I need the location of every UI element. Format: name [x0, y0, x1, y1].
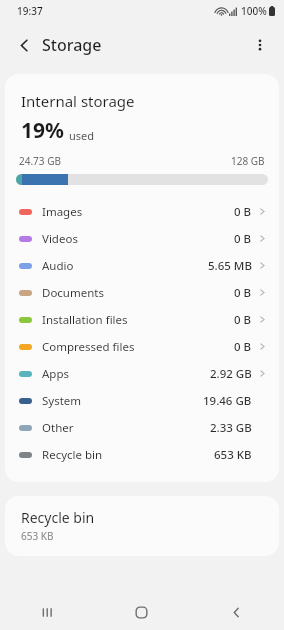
staticText: Recycle bin — [42, 447, 103, 463]
button[interactable]: Compressed files — [5, 333, 279, 360]
staticText: Apps — [42, 366, 70, 382]
staticText: 2.33 GB — [210, 420, 252, 436]
staticText: 0 B — [234, 285, 252, 301]
staticText: Documents — [42, 285, 104, 301]
staticText: 100% — [241, 4, 267, 18]
staticText: 128 GB — [231, 154, 265, 168]
button[interactable]: Apps — [5, 360, 279, 387]
staticText: 19:37 — [17, 4, 43, 18]
staticText: Other — [42, 420, 74, 436]
staticText: Installation files — [42, 312, 128, 328]
staticText: 653 KB — [21, 529, 54, 543]
button[interactable]: Home — [94, 594, 189, 630]
staticText: Storage — [42, 34, 102, 56]
button[interactable]: Documents — [5, 279, 279, 306]
staticText: Recycle bin — [21, 508, 95, 527]
staticText: 0 B — [234, 312, 252, 328]
staticText: System — [42, 393, 82, 409]
staticText: 0 B — [234, 339, 252, 355]
staticText: 0 B — [234, 204, 252, 220]
staticText: 19% — [21, 116, 64, 145]
button[interactable]: System — [5, 387, 279, 414]
staticText: Images — [42, 204, 83, 220]
staticText: 2.92 GB — [210, 366, 252, 382]
button[interactable]: Audio — [5, 252, 279, 279]
button[interactable]: Recycle bin — [5, 441, 279, 468]
button[interactable]: Recents — [0, 594, 94, 630]
button[interactable]: Other — [5, 414, 279, 441]
staticText: Compressed files — [42, 339, 135, 355]
staticText: 653 KB — [214, 447, 252, 463]
button[interactable]: Images — [5, 198, 279, 225]
button[interactable]: Back — [6, 27, 42, 63]
button[interactable]: More options — [242, 27, 278, 63]
staticText: 5.65 MB — [208, 258, 252, 274]
staticText: 24.73 GB — [19, 154, 61, 168]
staticText: Audio — [42, 258, 74, 274]
button[interactable]: Videos — [5, 225, 279, 252]
staticText: 0 B — [234, 231, 252, 247]
staticText: used — [69, 128, 95, 143]
button[interactable]: Back — [189, 594, 284, 630]
staticText: 19.46 GB — [203, 393, 252, 409]
button[interactable]: Recycle bin — [5, 496, 279, 556]
button[interactable]: Installation files — [5, 306, 279, 333]
staticText: Videos — [42, 231, 78, 247]
staticText: Internal storage — [21, 91, 135, 111]
